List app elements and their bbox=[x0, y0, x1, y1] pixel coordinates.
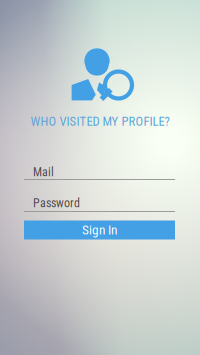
staticText: Password bbox=[33, 196, 80, 210]
staticText: Mail bbox=[33, 165, 54, 179]
staticText: WHO VISITED MY PROFILE? bbox=[30, 114, 169, 129]
button[interactable]: Sign In bbox=[24, 220, 175, 239]
staticText: Sign In bbox=[82, 222, 117, 238]
